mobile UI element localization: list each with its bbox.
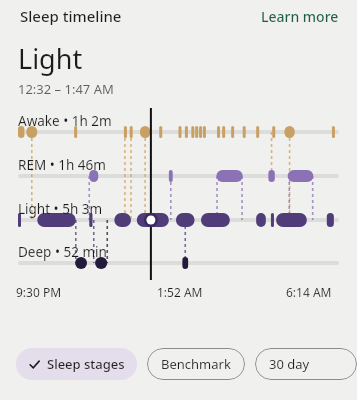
staticText: Sleep timeline	[20, 6, 122, 26]
button[interactable]: Learn more	[261, 7, 339, 26]
staticText: Learn more	[261, 7, 339, 26]
button[interactable]: Benchmark	[147, 348, 245, 380]
staticText: Awake • 1h 2m	[18, 112, 112, 130]
staticText: 12:32 – 1:47 AM	[18, 80, 114, 98]
staticText: 6:14 AM	[286, 284, 332, 300]
button[interactable]: Sleep stages	[16, 348, 137, 380]
staticText: 30 day average	[269, 355, 343, 373]
staticText: Light	[18, 40, 83, 77]
staticText: REM • 1h 46m	[18, 156, 106, 174]
staticText: Deep • 52 min	[18, 243, 107, 261]
staticText: 9:30 PM	[16, 284, 62, 300]
staticText: Light • 5h 3m	[18, 200, 103, 218]
staticText: Benchmark	[161, 355, 231, 373]
button[interactable]: 30 day average	[255, 348, 357, 380]
staticText: 1:52 AM	[157, 284, 203, 300]
staticText: Sleep stages	[47, 355, 125, 373]
